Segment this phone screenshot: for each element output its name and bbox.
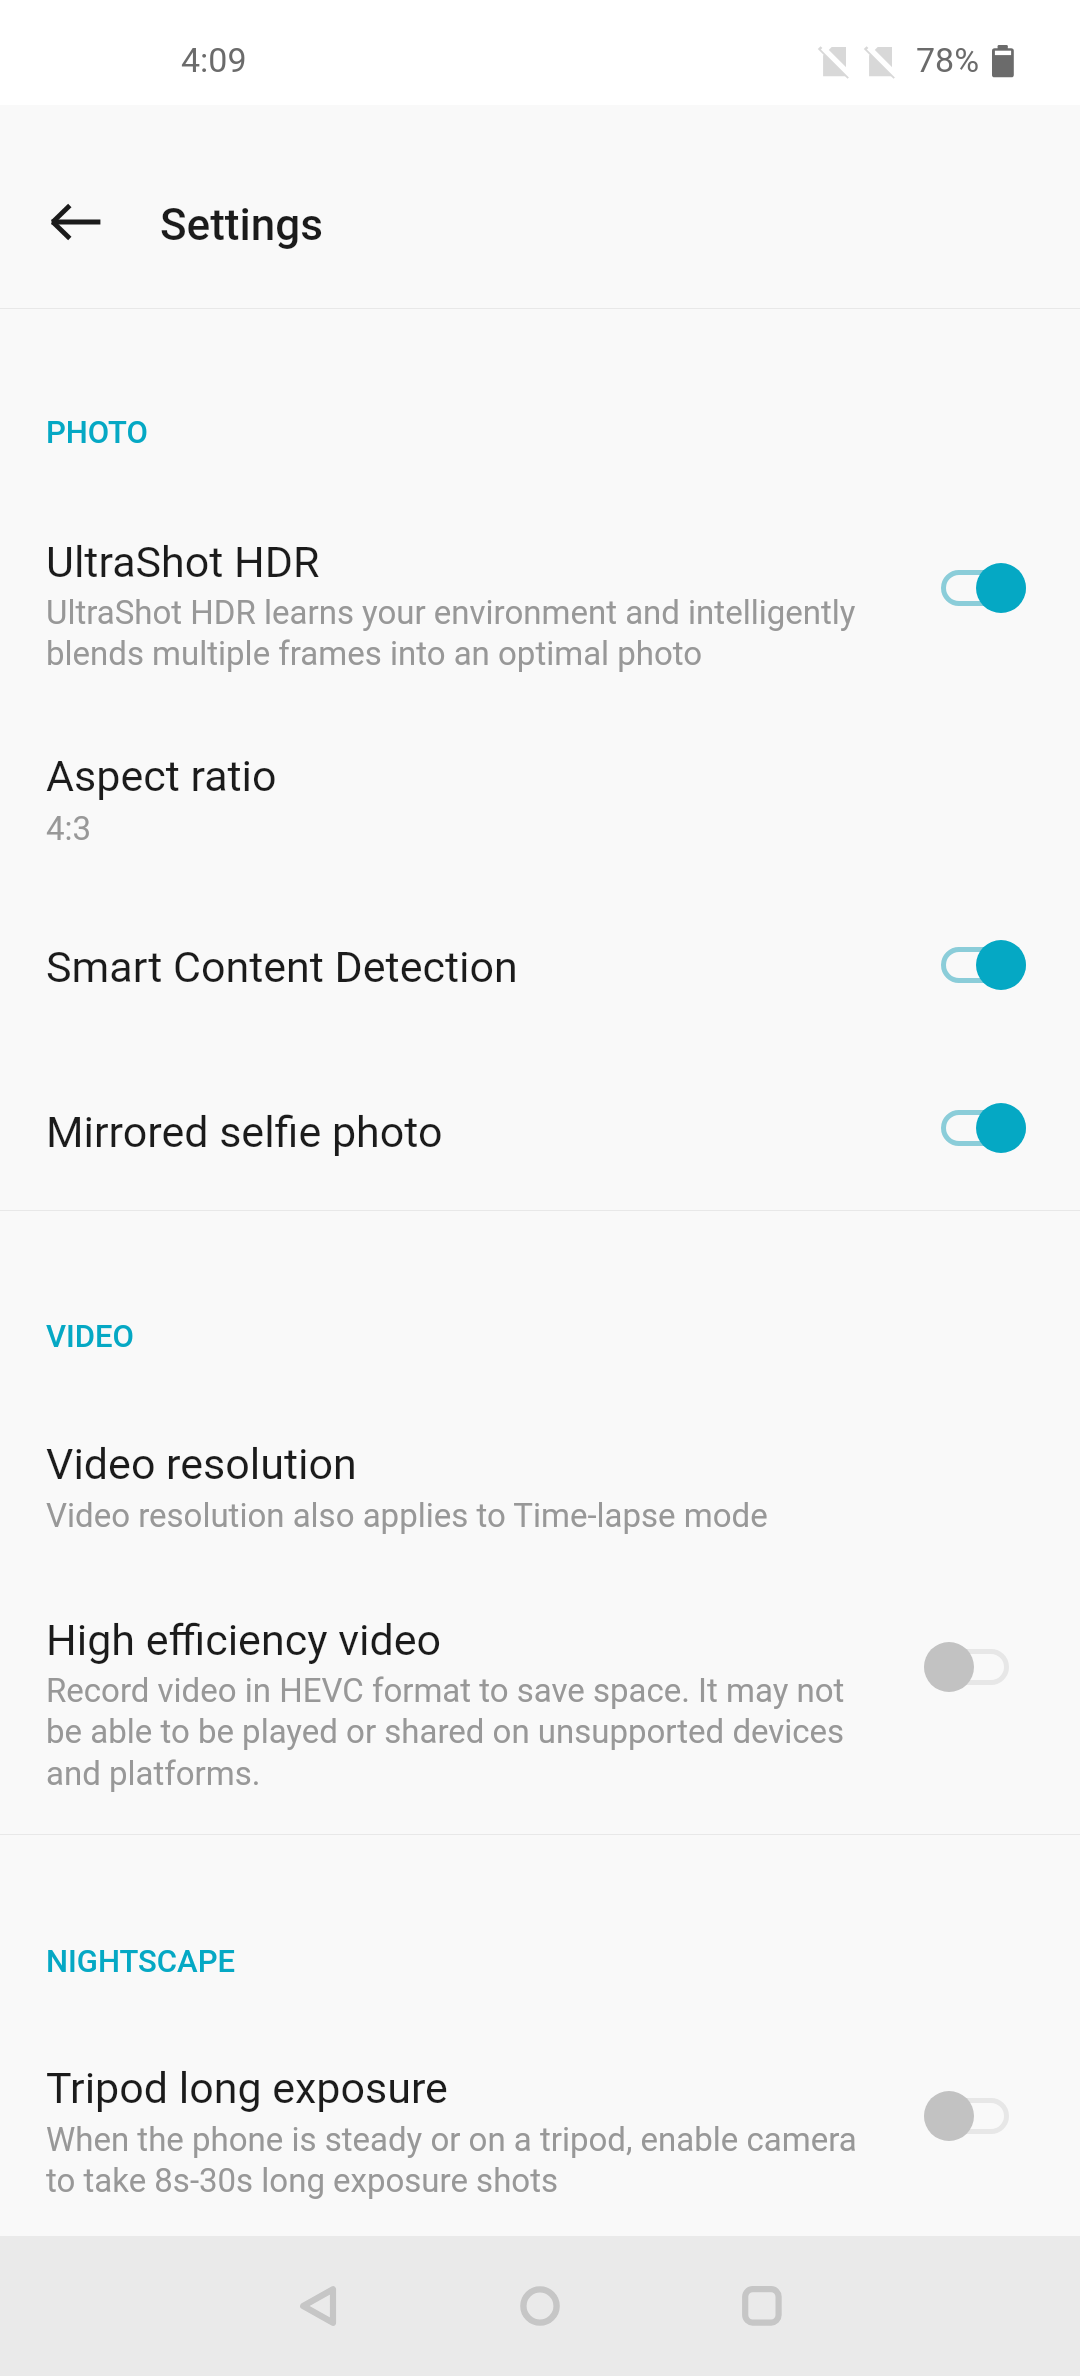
- staticText: Settings: [160, 199, 323, 251]
- staticText: 78%: [916, 40, 980, 80]
- staticText: Tripod long exposure: [46, 2063, 448, 2113]
- staticText: UltraShot HDR: [46, 537, 320, 587]
- staticText: PHOTO: [46, 414, 148, 450]
- button[interactable]: UltraShot HDR: [0, 376, 1080, 694]
- staticText: UltraShot HDR learns your environment an…: [46, 593, 871, 673]
- button[interactable]: Aspect ratio: [0, 694, 1080, 885]
- button[interactable]: Toggle on: [924, 563, 1026, 613]
- staticText: Video resolution also applies to Time-la…: [46, 1496, 768, 1535]
- staticText: 4:09: [181, 40, 247, 80]
- staticText: When the phone is steady or on a tripod,…: [46, 2120, 871, 2200]
- staticText: Mirrored selfie photo: [46, 1107, 443, 1157]
- staticText: Record video in HEVC format to save spac…: [46, 1671, 871, 1793]
- button[interactable]: Smart Content Detection: [0, 885, 1080, 1048]
- staticText: Aspect ratio: [46, 751, 277, 801]
- staticText: VIDEO: [46, 1318, 135, 1354]
- button[interactable]: Back: [21, 167, 131, 277]
- button[interactable]: Tripod long exposure: [0, 2011, 1080, 2236]
- button[interactable]: Toggle on: [924, 940, 1026, 990]
- button[interactable]: Video resolution: [0, 1387, 1080, 1561]
- staticText: High efficiency video: [46, 1615, 442, 1665]
- button[interactable]: Recent apps: [697, 2241, 827, 2371]
- staticText: 4:3: [46, 809, 92, 848]
- staticText: Smart Content Detection: [46, 942, 518, 992]
- button[interactable]: Back: [253, 2241, 383, 2371]
- button[interactable]: Toggle on: [924, 1103, 1026, 1153]
- button[interactable]: Home: [475, 2241, 605, 2371]
- staticText: Video resolution: [46, 1439, 357, 1489]
- button[interactable]: High efficiency video: [0, 1561, 1080, 1833]
- button[interactable]: Toggle off: [924, 1642, 1026, 1692]
- staticText: NIGHTSCAPE: [46, 1943, 236, 1979]
- button[interactable]: Mirrored selfie photo: [0, 1048, 1080, 1210]
- button[interactable]: Toggle off: [924, 2091, 1026, 2141]
